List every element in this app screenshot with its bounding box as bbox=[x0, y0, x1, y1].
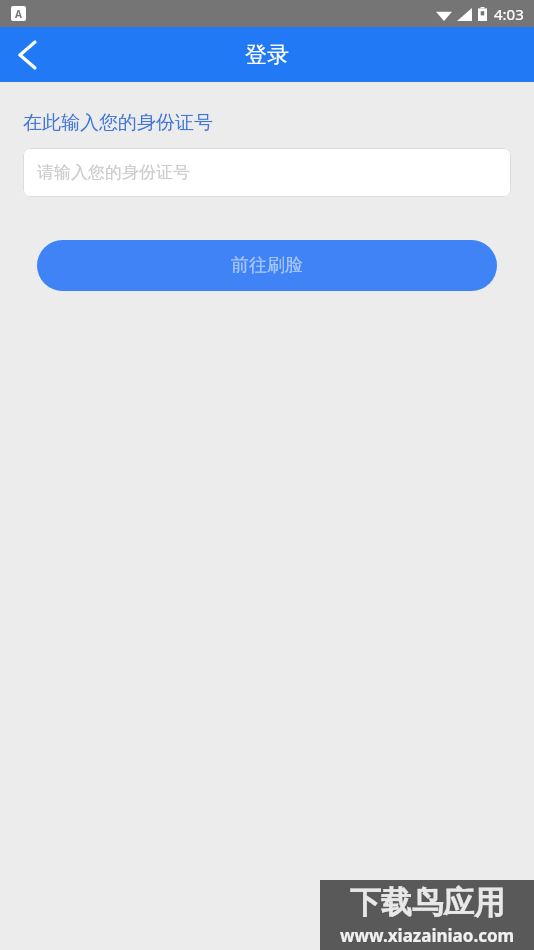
staticText: 在此输入您的身份证号 bbox=[23, 111, 213, 135]
staticText: 登录 bbox=[245, 41, 289, 69]
staticText: www.xiazainiao.com bbox=[340, 924, 515, 947]
button[interactable]: 前往刷脸 bbox=[37, 240, 497, 291]
staticText: 4:03 bbox=[494, 4, 524, 24]
button[interactable]: 请输入您的身份证号 bbox=[23, 148, 511, 197]
staticText: 请输入您的身份证号 bbox=[37, 162, 190, 183]
staticText: 下载鸟应用 bbox=[350, 883, 505, 922]
staticText: 前往刷脸 bbox=[231, 254, 303, 277]
button[interactable]: Back bbox=[0, 27, 54, 82]
staticText: A bbox=[15, 7, 22, 21]
